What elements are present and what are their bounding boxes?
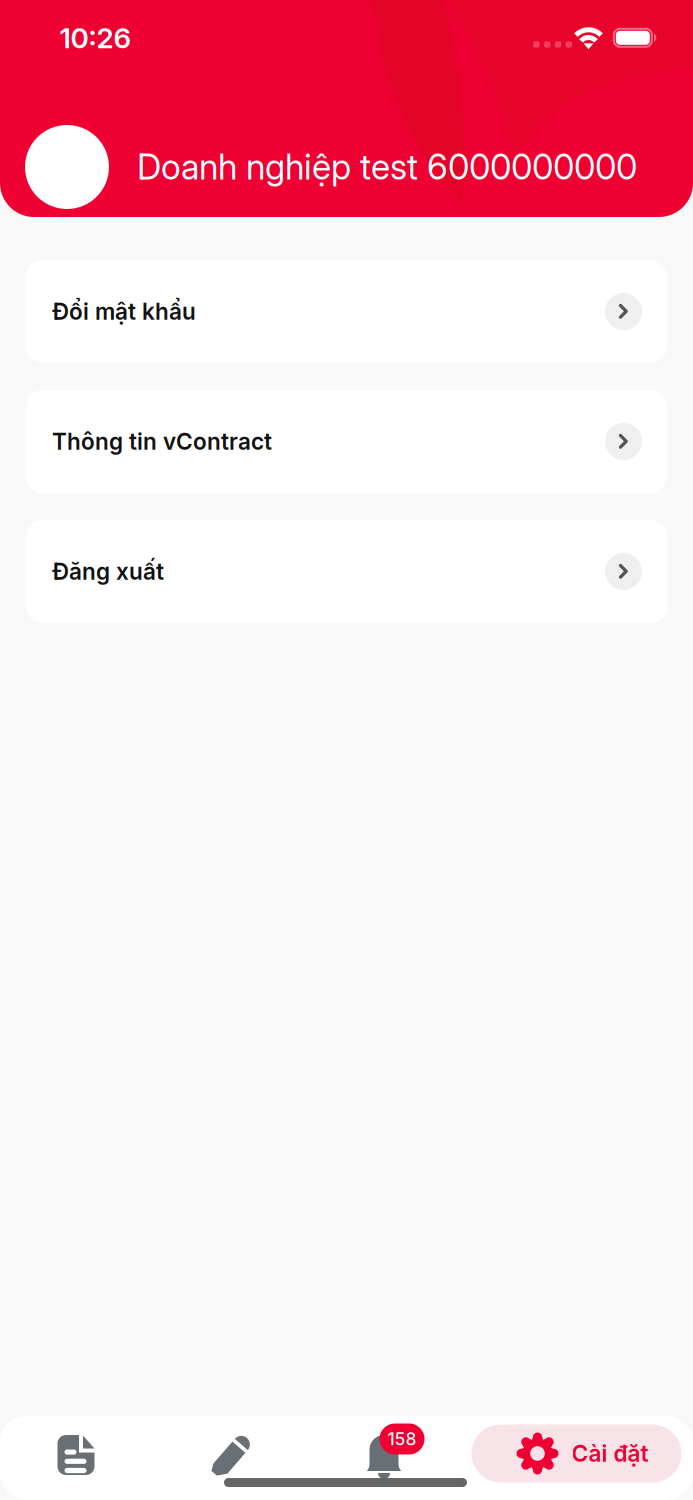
- button[interactable]: Cài đặt: [471, 1424, 681, 1482]
- staticText: 158: [387, 1428, 416, 1449]
- staticText: Đổi mật khẩu: [52, 298, 196, 325]
- staticText: Cài đặt: [571, 1440, 648, 1467]
- button[interactable]: Đăng xuất: [26, 520, 667, 623]
- staticText: Thông tin vContract: [52, 428, 272, 455]
- button[interactable]: Notifications: [324, 1411, 442, 1495]
- staticText: Doanh nghiệp test 6000000000: [137, 146, 637, 188]
- button[interactable]: Đổi mật khẩu: [26, 260, 667, 363]
- button[interactable]: Thông tin vContract: [26, 390, 667, 493]
- staticText: 10:26: [59, 21, 131, 55]
- button[interactable]: Documents: [17, 1413, 135, 1497]
- staticText: Đăng xuất: [52, 558, 164, 585]
- button[interactable]: Sign: [173, 1414, 291, 1498]
